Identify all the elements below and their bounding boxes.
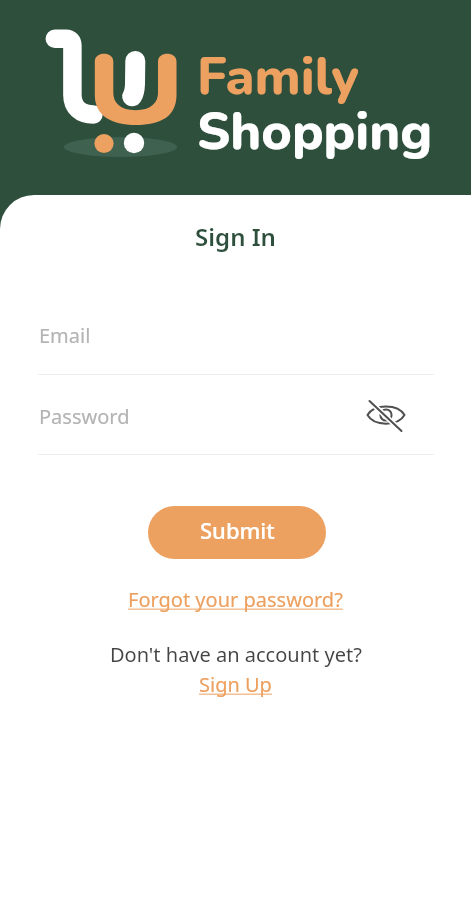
button[interactable]: Sign Up — [199, 671, 272, 698]
staticText: Don't have an account yet? — [110, 641, 362, 668]
button[interactable]: Forgot your password? — [128, 586, 343, 613]
staticText: Shopping — [197, 96, 433, 167]
staticText: Sign In — [0, 220, 471, 253]
staticText: Password — [39, 403, 130, 430]
staticText: Submit — [200, 515, 275, 545]
staticText: Family — [197, 41, 360, 112]
staticText: Email — [39, 322, 91, 349]
button[interactable]: Submit — [148, 506, 326, 559]
button[interactable]: Show password — [366, 395, 406, 435]
